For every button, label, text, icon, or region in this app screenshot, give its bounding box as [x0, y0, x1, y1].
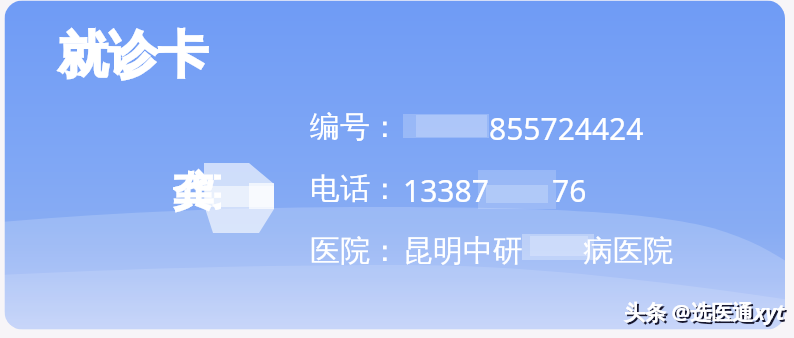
staticText: xyt: [754, 298, 785, 327]
staticText: 医院：: [310, 232, 400, 270]
staticText: 电话：: [310, 170, 400, 208]
staticText: 就诊卡: [58, 24, 208, 87]
button[interactable]: 就诊卡: [0, 0, 794, 338]
staticText: 76: [552, 170, 587, 211]
staticText: 头条 @选医通: [624, 298, 754, 327]
staticText: 病医院: [583, 232, 673, 270]
staticText: 龚某某: [173, 166, 221, 216]
staticText: xyt: [756, 300, 787, 329]
staticText: 13387: [403, 170, 489, 211]
staticText: 昆明中研: [403, 232, 523, 270]
staticText: 编号：: [310, 108, 400, 146]
staticText: 头条 @选医通: [626, 300, 756, 329]
staticText: 855724424: [489, 108, 644, 149]
